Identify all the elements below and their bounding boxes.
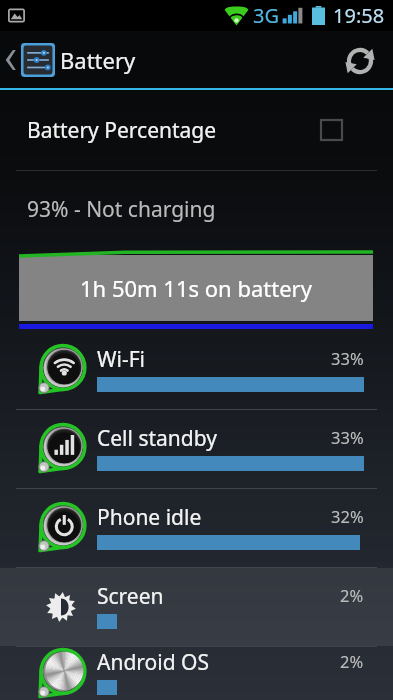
button[interactable]: Cell standby: [0, 410, 393, 488]
staticText: Battery Percentage: [27, 116, 217, 145]
staticText: Wi-Fi: [97, 345, 146, 374]
button[interactable]: Screen: [0, 568, 393, 646]
staticText: 33%: [331, 347, 364, 369]
staticText: 2%: [340, 650, 364, 672]
staticText: Android OS: [97, 648, 209, 677]
staticText: 93% - Not charging: [27, 195, 216, 224]
button[interactable]: Battery Percentage: [0, 90, 393, 170]
button[interactable]: Android OS: [0, 647, 393, 700]
button[interactable]: Wi-Fi: [0, 331, 393, 409]
staticText: Screen: [97, 582, 164, 611]
staticText: 2%: [340, 584, 364, 606]
staticText: Battery: [60, 45, 136, 75]
button[interactable]: Phone idle: [0, 489, 393, 567]
button[interactable]: Refresh: [336, 31, 393, 88]
staticText: 1h 50m 11s on battery: [80, 273, 312, 303]
staticText: Phone idle: [97, 503, 202, 532]
staticText: Cell standby: [97, 424, 217, 453]
staticText: 19:58: [333, 2, 385, 29]
staticText: 3G: [253, 2, 279, 29]
button[interactable]: Navigate up: [0, 33, 59, 87]
staticText: 33%: [331, 426, 364, 448]
staticText: 32%: [331, 505, 364, 527]
